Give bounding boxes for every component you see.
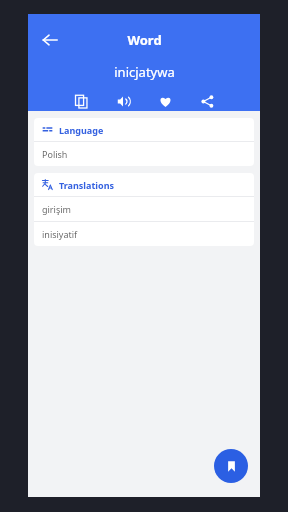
staticText: Polish	[42, 148, 68, 160]
button[interactable]: Back	[34, 24, 66, 56]
staticText: Translations	[59, 179, 115, 191]
button[interactable]: Listen	[111, 92, 135, 111]
staticText: girişim	[42, 203, 71, 215]
staticText: inisiyatif	[42, 228, 78, 240]
button[interactable]: girişim	[34, 197, 254, 221]
button[interactable]: Translations	[34, 173, 254, 196]
button[interactable]: Share	[195, 92, 219, 111]
staticText: inicjatywa	[114, 63, 175, 81]
staticText: Language	[59, 124, 104, 136]
button[interactable]: Favorite	[153, 92, 177, 111]
button[interactable]: Bookmark	[214, 449, 248, 483]
button[interactable]: Copy	[69, 92, 93, 111]
staticText: Word	[127, 31, 162, 49]
button[interactable]: Language	[34, 118, 254, 141]
button[interactable]: inisiyatif	[34, 222, 254, 246]
button[interactable]: Polish	[34, 142, 254, 166]
